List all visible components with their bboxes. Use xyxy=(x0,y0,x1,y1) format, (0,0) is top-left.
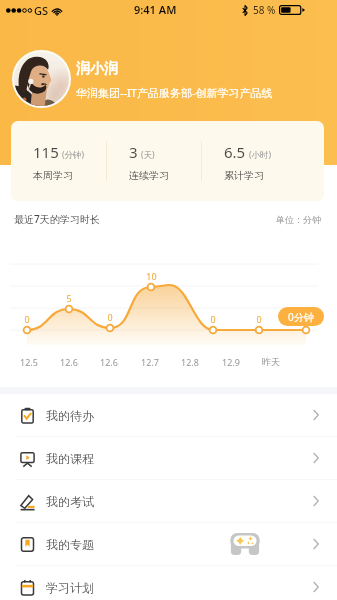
staticText: 最近7天的学习时长 xyxy=(14,212,100,226)
button[interactable]: 我的课程 xyxy=(0,437,337,479)
staticText: 学习计划 xyxy=(46,580,94,595)
staticText: 昨天 xyxy=(262,356,280,367)
staticText: (天) xyxy=(141,149,155,161)
staticText: 连续学习 xyxy=(129,169,169,182)
staticText: 10 xyxy=(146,270,157,282)
staticText: GS xyxy=(34,3,49,18)
staticText: 我的课程 xyxy=(46,451,94,466)
button[interactable]: 我的待办 xyxy=(0,394,337,436)
staticText: 12.7 xyxy=(141,356,159,368)
staticText: 12.8 xyxy=(181,356,199,368)
staticText: 润小润 xyxy=(76,60,118,78)
staticText: 本周学习 xyxy=(33,169,73,182)
staticText: 115 xyxy=(33,142,59,162)
staticText: 12.9 xyxy=(222,356,240,368)
staticText: 我的待办 xyxy=(46,408,94,423)
staticText: 6.5 xyxy=(224,142,246,162)
staticText: 我的考试 xyxy=(46,494,94,509)
staticText: (分钟) xyxy=(62,149,85,161)
staticText: 5 xyxy=(66,292,72,304)
staticText: 58 % xyxy=(253,3,276,17)
staticText: 累计学习 xyxy=(224,169,264,182)
staticText: 0 xyxy=(24,313,30,325)
staticText: 12.6 xyxy=(100,356,118,368)
staticText: 0 xyxy=(210,313,216,325)
staticText: 单位：分钟 xyxy=(276,214,321,225)
staticText: 0分钟 xyxy=(288,310,314,324)
staticText: 华润集团--IT产品服务部-创新学习产品线 xyxy=(76,85,273,100)
staticText: 0 xyxy=(107,311,113,323)
staticText: 12.5 xyxy=(20,356,38,368)
staticText: 12.6 xyxy=(60,356,78,368)
button[interactable]: 我的专题 xyxy=(0,523,337,565)
button[interactable]: 学习计划 xyxy=(0,566,337,600)
staticText: 我的专题 xyxy=(46,537,94,552)
staticText: 3 xyxy=(129,142,138,162)
staticText: 0 xyxy=(256,313,262,325)
staticText: (小时) xyxy=(249,149,272,161)
button[interactable]: 我的考试 xyxy=(0,480,337,522)
staticText: 9:41 AM xyxy=(134,2,177,17)
